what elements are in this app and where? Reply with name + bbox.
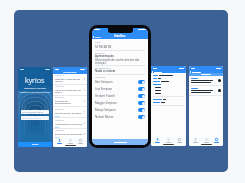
button[interactable]: Tab 1 [164,138,173,143]
staticText: 30/04/2018 [55,108,64,110]
staticText: Sumário [95,51,105,54]
button[interactable] [189,86,223,95]
staticText: Orações e meditações diárias [55,77,84,83]
button[interactable] [189,76,223,85]
staticText: 07/05/2018 [55,96,64,98]
button[interactable]: 16/05/2018 [53,74,87,84]
button[interactable]: Tab 0 [55,139,64,144]
staticText: Data [95,40,101,43]
staticText: Supporting a new good [18,87,52,90]
staticText: Principal e mais importante nele [18,91,52,94]
staticText: usuario@gmail.com.br [22,111,44,114]
button[interactable]: Herbert Powell [95,92,145,99]
staticText: Maggie Simpson [95,101,117,105]
button[interactable]: 12/05/2018 [53,85,87,95]
button[interactable]: Entrar [18,142,52,147]
staticText: Atendimento aos jovens [55,122,83,125]
staticText: Nelson Muntz [95,115,114,119]
button[interactable]: usuario@gmail.com.br [21,110,49,114]
staticText: 09:30 [55,136,60,138]
button[interactable]: Back [190,71,201,73]
staticText: Estudo bíblico semanal [55,111,82,114]
staticText: 11/04/2018 [55,129,64,131]
staticText: 22/04/2018 [55,119,64,121]
button[interactable]: Nelson Muntz [95,113,145,120]
button[interactable]: Tab 0 [191,138,200,143]
staticText: Observações [95,66,110,69]
button[interactable]: Back [93,35,101,38]
staticText: Atendimentos [63,71,77,74]
staticText: Visita aos enfermos do bairro [55,88,84,94]
button[interactable]: Tab 1 [202,138,211,143]
staticText: ••••• ••• •••• ••• •••• •• [22,117,41,120]
staticText: Nada a realizar [95,69,116,73]
staticText: Reunião de planejamento [55,99,84,105]
button[interactable]: Tab 0 [153,138,162,143]
staticText: 09:30 [55,126,60,128]
staticText: 12/05/2018 [55,85,64,87]
staticText: Observação de conhecimento das crianças [95,58,140,65]
staticText: Detalhes [114,34,126,38]
button[interactable]: 30/04/2018 [53,107,87,117]
staticText: Encontro de voluntários [55,132,83,135]
staticText: 09:30 [55,115,60,117]
button[interactable]: Tab 2 [212,138,221,143]
button[interactable]: ••••• ••• •••• ••• •••• •• [21,116,49,120]
staticText: Entrar [32,143,39,146]
button[interactable]: Bart Simpson [95,78,145,85]
staticText: Marge Simpson [95,108,116,112]
button[interactable]: 07/05/2018 [53,96,87,106]
button[interactable]: 22/04/2018 [53,118,87,128]
button[interactable]: Maggie Simpson [95,99,145,106]
button[interactable]: 11/04/2018 [53,129,87,138]
button[interactable]: Back [152,71,162,73]
staticText: 16/05/2018 [55,74,64,76]
button[interactable]: Tab 1 [66,139,75,144]
staticText: Apresentação [95,54,114,58]
button[interactable]: Tab 2 [175,138,184,143]
staticText: 5/16/2018 [95,44,112,49]
staticText: kyrios [25,75,45,85]
button[interactable]: Marge Simpson [95,106,145,113]
staticText: Herbert Powell [95,94,115,98]
button[interactable]: Lisa Simpson [95,85,145,92]
staticText: Presença [95,75,106,78]
staticText: Back [95,35,101,38]
staticText: Lisa Simpson [95,87,113,91]
button[interactable]: Tab 2 [76,139,85,144]
staticText: Bart Simpson [95,80,113,84]
